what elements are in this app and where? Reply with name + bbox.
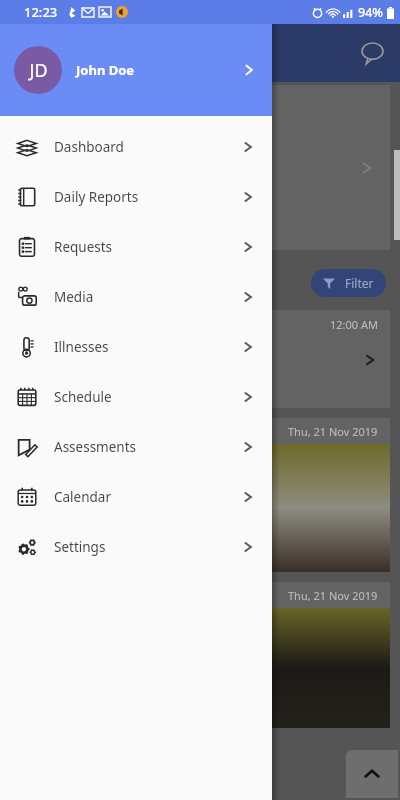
button[interactable]: Assessments bbox=[0, 422, 272, 472]
button[interactable] bbox=[10, 85, 390, 250]
staticText: John Doe bbox=[76, 61, 135, 79]
staticText: Dashboard bbox=[54, 138, 124, 156]
staticText: Requests bbox=[54, 238, 113, 256]
button[interactable]: Thu, 21 Nov 2019 bbox=[10, 418, 390, 572]
button[interactable]: Dashboard bbox=[0, 122, 272, 172]
button[interactable]: Daily Reports bbox=[0, 172, 272, 222]
button[interactable]: Schedule bbox=[0, 372, 272, 422]
button[interactable]: 12:00 AM bbox=[10, 310, 390, 408]
button[interactable]: Calendar bbox=[0, 472, 272, 522]
staticText: Illnesses bbox=[54, 338, 109, 356]
button[interactable]: Illnesses bbox=[0, 322, 272, 372]
staticText: Media bbox=[54, 288, 94, 306]
staticText: You are invited to the following event: bbox=[22, 352, 235, 368]
button[interactable]: Requests bbox=[0, 222, 272, 272]
staticText: 12:00 AM bbox=[330, 317, 378, 332]
button[interactable]: Media bbox=[0, 272, 272, 322]
staticText: 94% bbox=[358, 4, 383, 21]
button[interactable]: Messages bbox=[352, 33, 392, 73]
staticText: Schedule bbox=[54, 388, 112, 406]
staticText: Daily Reports bbox=[54, 188, 139, 206]
staticText: Thu, 21 Nov 2019 bbox=[288, 424, 378, 439]
staticText: 12:23 bbox=[24, 3, 58, 21]
button[interactable]: Scroll to top bbox=[346, 750, 398, 798]
button[interactable]: Filter bbox=[311, 269, 386, 297]
button[interactable]: Settings bbox=[0, 522, 272, 572]
staticText: Filter bbox=[345, 275, 374, 291]
button[interactable]: Thu, 21 Nov 2019 bbox=[10, 582, 390, 728]
staticText: JD bbox=[29, 58, 48, 83]
staticText: Calendar bbox=[54, 488, 111, 506]
button[interactable]: JD bbox=[0, 24, 272, 116]
staticText: Thu, 21 Nov 2019 bbox=[288, 588, 378, 603]
staticText: Assessments bbox=[54, 438, 137, 456]
staticText: Settings bbox=[54, 538, 106, 556]
